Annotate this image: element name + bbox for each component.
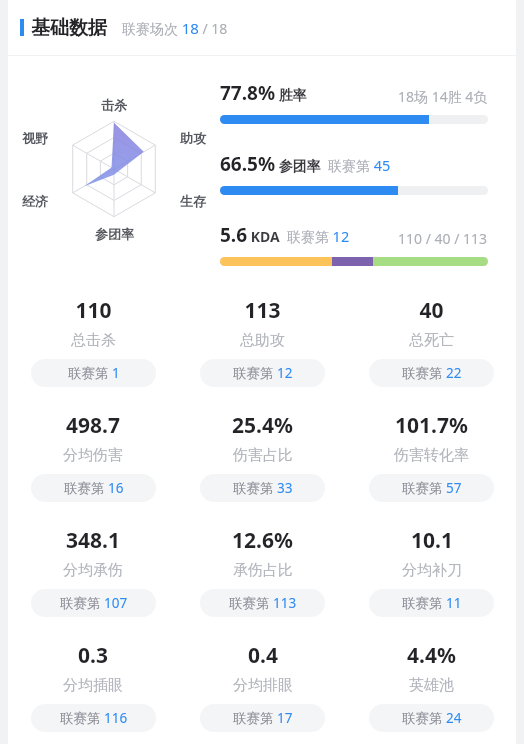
staticText: 生存 [180,193,206,209]
button[interactable]: 66.5% 参团率 联赛第 45 [220,151,488,195]
staticText: 分均承伤 [63,561,123,580]
staticText: 总击杀 [71,331,116,350]
staticText: 总死亡 [409,331,454,350]
staticText: 40 [419,296,444,325]
staticText: 77.8% 胜率 [220,80,307,106]
staticText: 联赛第 11 [402,594,462,612]
staticText: 联赛第 33 [233,479,293,497]
staticText: 联赛场次 18 / 18 [122,18,228,38]
staticText: 经济 [22,193,48,209]
button[interactable]: 4.4% [347,627,516,742]
staticText: 视野 [22,130,48,146]
button[interactable]: 40 [347,282,516,397]
staticText: 0.3 [78,641,108,670]
staticText: 66.5% 参团率 联赛第 45 [220,151,391,177]
staticText: 联赛第 107 [60,594,128,612]
staticText: 分均伤害 [63,446,123,465]
staticText: 联赛第 16 [64,479,124,497]
staticText: 联赛第 57 [402,479,462,497]
staticText: 联赛第 113 [229,594,297,612]
button[interactable]: 113 [178,282,347,397]
button[interactable]: 110 [8,282,178,397]
staticText: 分均排眼 [233,676,293,695]
staticText: 10.1 [411,526,453,555]
staticText: 击杀 [101,97,127,113]
staticText: 助攻 [180,130,206,146]
button[interactable]: 5.6 KDA 联赛第 12 [220,222,488,266]
staticText: 联赛第 22 [402,364,462,382]
staticText: 110 [75,296,112,325]
staticText: 联赛第 1 [68,364,120,382]
staticText: 分均补刀 [402,561,462,580]
staticText: 4.4% [407,641,456,670]
button[interactable]: 77.8% 胜率 [220,80,488,124]
staticText: 110 / 40 / 113 [398,229,488,248]
button[interactable]: 498.7 [8,397,178,512]
staticText: 伤害转化率 [394,446,469,465]
staticText: 101.7% [395,411,468,440]
button[interactable]: 0.4 [178,627,347,742]
button[interactable]: 348.1 [8,512,178,627]
staticText: 348.1 [66,526,120,555]
staticText: 联赛第 116 [60,709,128,727]
staticText: 113 [244,296,281,325]
staticText: 498.7 [66,411,120,440]
staticText: 12.6% [232,526,293,555]
staticText: 25.4% [232,411,293,440]
staticText: 参团率 [95,226,134,242]
staticText: 英雄池 [409,676,454,695]
button[interactable]: 0.3 [8,627,178,742]
staticText: 联赛第 17 [233,709,293,727]
button[interactable]: 101.7% [347,397,516,512]
staticText: 承伤占比 [233,561,293,580]
staticText: 分均插眼 [63,676,123,695]
button[interactable]: 25.4% [178,397,347,512]
button[interactable]: 12.6% [178,512,347,627]
button[interactable]: 10.1 [347,512,516,627]
staticText: 0.4 [248,641,278,670]
staticText: 总助攻 [240,331,285,350]
staticText: 基础数据 [31,16,107,40]
staticText: 联赛第 12 [233,364,293,382]
staticText: 伤害占比 [233,446,293,465]
staticText: 5.6 KDA 联赛第 12 [220,222,350,248]
button[interactable]: 基础数据 [8,0,516,55]
staticText: 18场 14胜 4负 [398,87,488,106]
staticText: 联赛第 24 [402,709,462,727]
